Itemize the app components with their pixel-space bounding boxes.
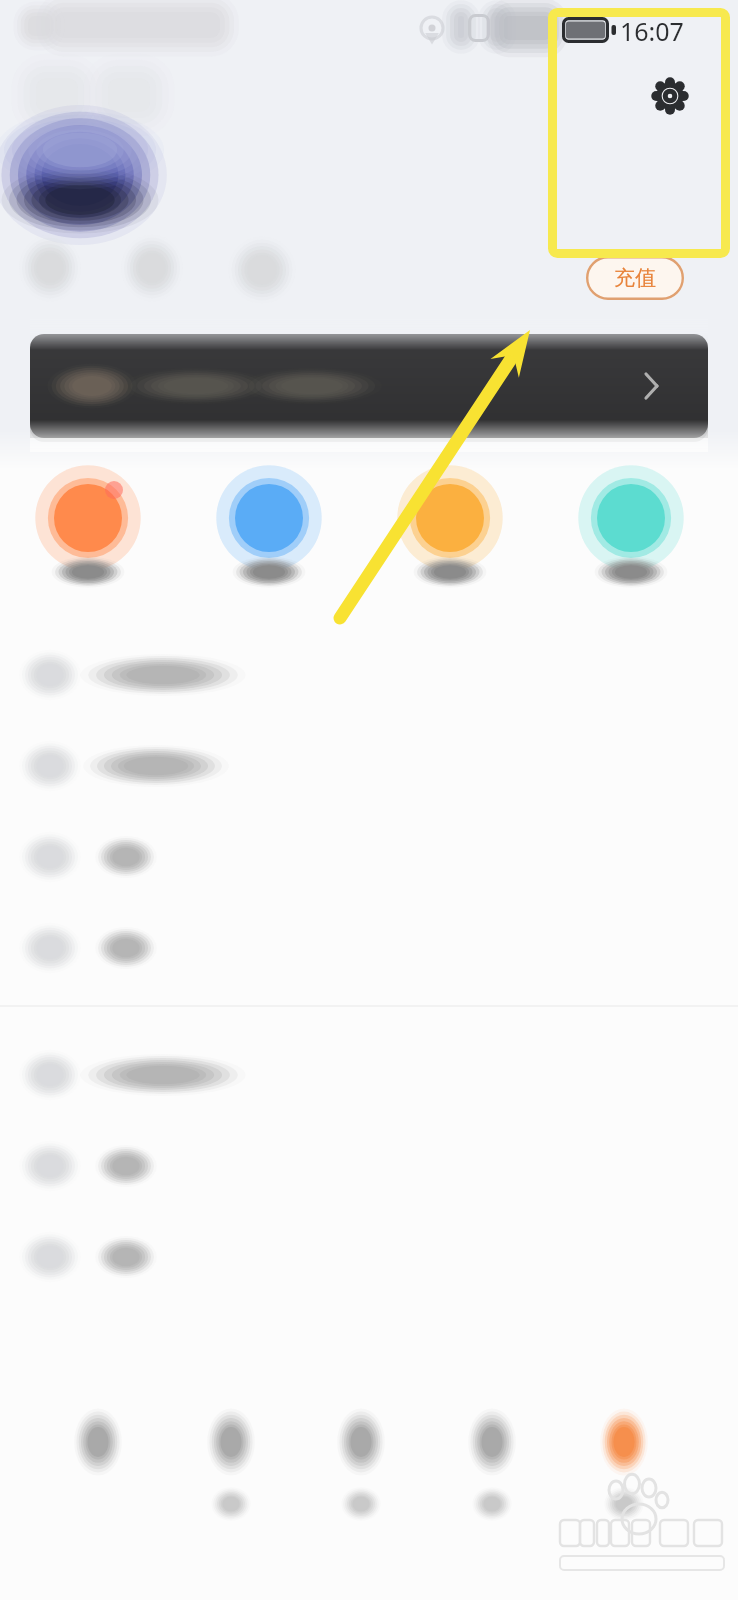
button[interactable]: Profile: [16, 120, 316, 230]
button[interactable]: Setting item 2: [0, 1123, 738, 1214]
button[interactable]: 充值: [586, 256, 684, 300]
button[interactable]: Orders: [20, 470, 180, 590]
button[interactable]: Setting item 3: [0, 1214, 738, 1305]
button[interactable]: List item 3: [0, 814, 738, 905]
button[interactable]: Wallet: [558, 470, 718, 590]
button[interactable]: Coupons: [379, 470, 539, 590]
button[interactable]: Home: [0, 1400, 147, 1560]
button[interactable]: List item 1: [0, 632, 738, 723]
button[interactable]: Favorites: [199, 470, 359, 590]
staticText: 充值: [614, 265, 656, 291]
button[interactable]: Discover: [294, 1400, 442, 1560]
button[interactable]: Membership banner: [30, 334, 708, 438]
button[interactable]: List item 2: [0, 723, 738, 814]
button[interactable]: Cart: [442, 1400, 590, 1560]
button[interactable]: Category: [147, 1400, 294, 1560]
button[interactable]: Setting item 1: [0, 1032, 738, 1123]
button[interactable]: List item 4: [0, 905, 738, 996]
button[interactable]: Settings: [642, 68, 698, 124]
button[interactable]: Me: [590, 1400, 738, 1560]
staticText: 16:07: [620, 14, 684, 48]
